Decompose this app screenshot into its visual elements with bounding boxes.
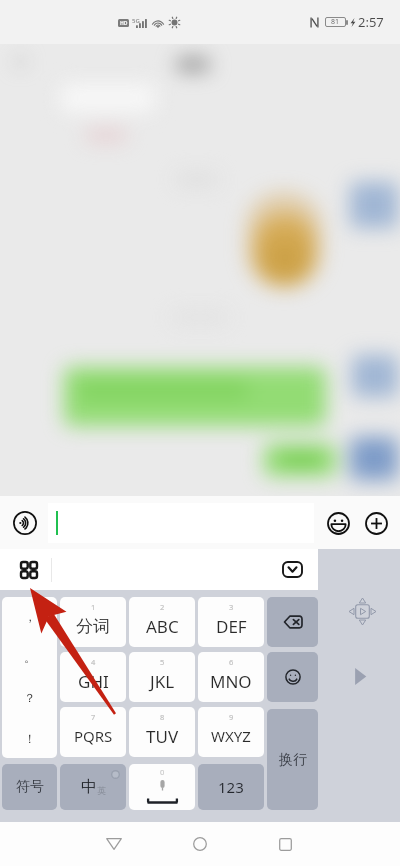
button[interactable]: Hide keyboard [266,549,318,590]
staticText: 英 [97,785,106,796]
staticText: MNO [210,670,252,693]
staticText: JKL [150,670,175,693]
staticText: 1 [91,602,96,612]
staticText: ？ [24,690,36,705]
staticText: 123 [218,777,244,797]
staticText: TUV [146,725,179,748]
button[interactable]: Punctuation [2,597,57,758]
button[interactable]: Home [172,822,228,866]
staticText: 2 [160,602,165,612]
button[interactable]: 5 [129,652,195,702]
staticText: 中 [81,777,97,797]
button[interactable]: 4 [60,652,126,702]
button[interactable]: 中 [60,764,126,810]
button[interactable]: 换行 [267,709,318,810]
button[interactable]: 123 [198,764,264,810]
staticText: WXYZ [211,726,251,746]
staticText: 5G [132,17,140,25]
button[interactable]: Move keyboard [346,595,379,628]
button[interactable]: Backspace [267,597,318,647]
staticText: 9 [229,712,234,722]
button[interactable]: Space [129,764,195,810]
button[interactable]: Recents [257,822,313,866]
button[interactable]: Back [86,822,142,866]
staticText: 0 [160,767,165,777]
staticText: 2:57 [358,13,384,31]
staticText: HD [120,20,128,27]
button[interactable]: 7 [60,707,126,757]
staticText: 符号 [16,778,44,796]
staticText: 4 [91,657,96,667]
staticText: DEF [216,615,247,638]
staticText: 。 [24,650,36,665]
button[interactable]: Voice input [12,510,38,536]
button[interactable]: 符号 [2,764,57,810]
button[interactable]: 6 [198,652,264,702]
staticText: ABC [146,615,179,638]
staticText: 8 [160,712,165,722]
button[interactable]: 3 [198,597,264,647]
button[interactable]: Emoji [267,652,318,702]
button[interactable]: 8 [129,707,195,757]
staticText: 6 [229,657,234,667]
button[interactable] [48,503,314,543]
staticText: PQRS [74,726,113,746]
button[interactable]: Keyboard apps [0,549,58,590]
button[interactable]: 9 [198,707,264,757]
staticText: 5 [160,657,165,667]
button[interactable]: More [363,510,389,536]
staticText: 换行 [279,751,307,769]
button[interactable]: Emoji [325,510,351,536]
staticText: GHI [78,670,109,693]
staticText: 3 [229,602,234,612]
staticText: ！ [24,731,36,746]
staticText: 7 [91,712,96,722]
button[interactable]: 2 [129,597,195,647]
staticText: 分词 [76,616,110,637]
button[interactable]: 1 [60,597,126,647]
staticText: ， [24,609,36,624]
button[interactable]: Expand [344,660,376,692]
staticText: 81 [331,17,340,27]
